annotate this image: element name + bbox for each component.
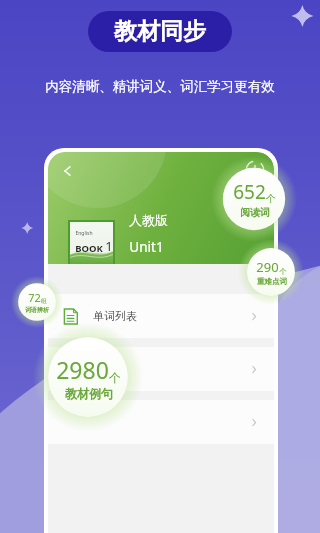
button[interactable]: 教材同步	[88, 11, 232, 52]
staticText: 个	[266, 192, 276, 205]
staticText: 学习	[93, 362, 115, 376]
staticText: 652	[233, 179, 266, 205]
staticText: 2980	[56, 354, 109, 385]
staticText: 个	[279, 267, 287, 276]
staticText: Unit1	[129, 238, 164, 256]
button[interactable]: 单词列表	[48, 294, 274, 338]
staticText: 词语辨析	[25, 306, 49, 314]
staticText: 内容清晰、精讲词义、词汇学习更有效	[45, 78, 275, 95]
staticText: 72	[28, 290, 41, 305]
staticText: BOOK	[75, 242, 103, 255]
staticText: 人教版	[129, 212, 168, 228]
button[interactable]: 652个 阅读词	[211, 156, 297, 242]
staticText: 个	[109, 370, 121, 385]
button[interactable]: 学习	[48, 347, 274, 391]
button[interactable]: Back	[56, 160, 78, 182]
staticText: 重难点词	[257, 277, 287, 286]
staticText: 教材例句	[65, 386, 113, 401]
staticText: 290	[256, 258, 279, 276]
staticText: 组	[41, 297, 47, 305]
staticText: 1	[105, 237, 113, 255]
staticText: 单词列表	[93, 309, 137, 323]
button[interactable]: 72组 词语辨析	[11, 276, 63, 328]
staticText: English	[75, 230, 93, 237]
button[interactable]: History	[245, 160, 265, 180]
button[interactable]: 2980个 教材例句	[33, 322, 143, 432]
staticText: 教材同步	[114, 17, 206, 46]
button[interactable]	[48, 400, 274, 444]
staticText: 阅读词	[240, 206, 270, 219]
button[interactable]: 290个 重难点词	[238, 239, 304, 305]
